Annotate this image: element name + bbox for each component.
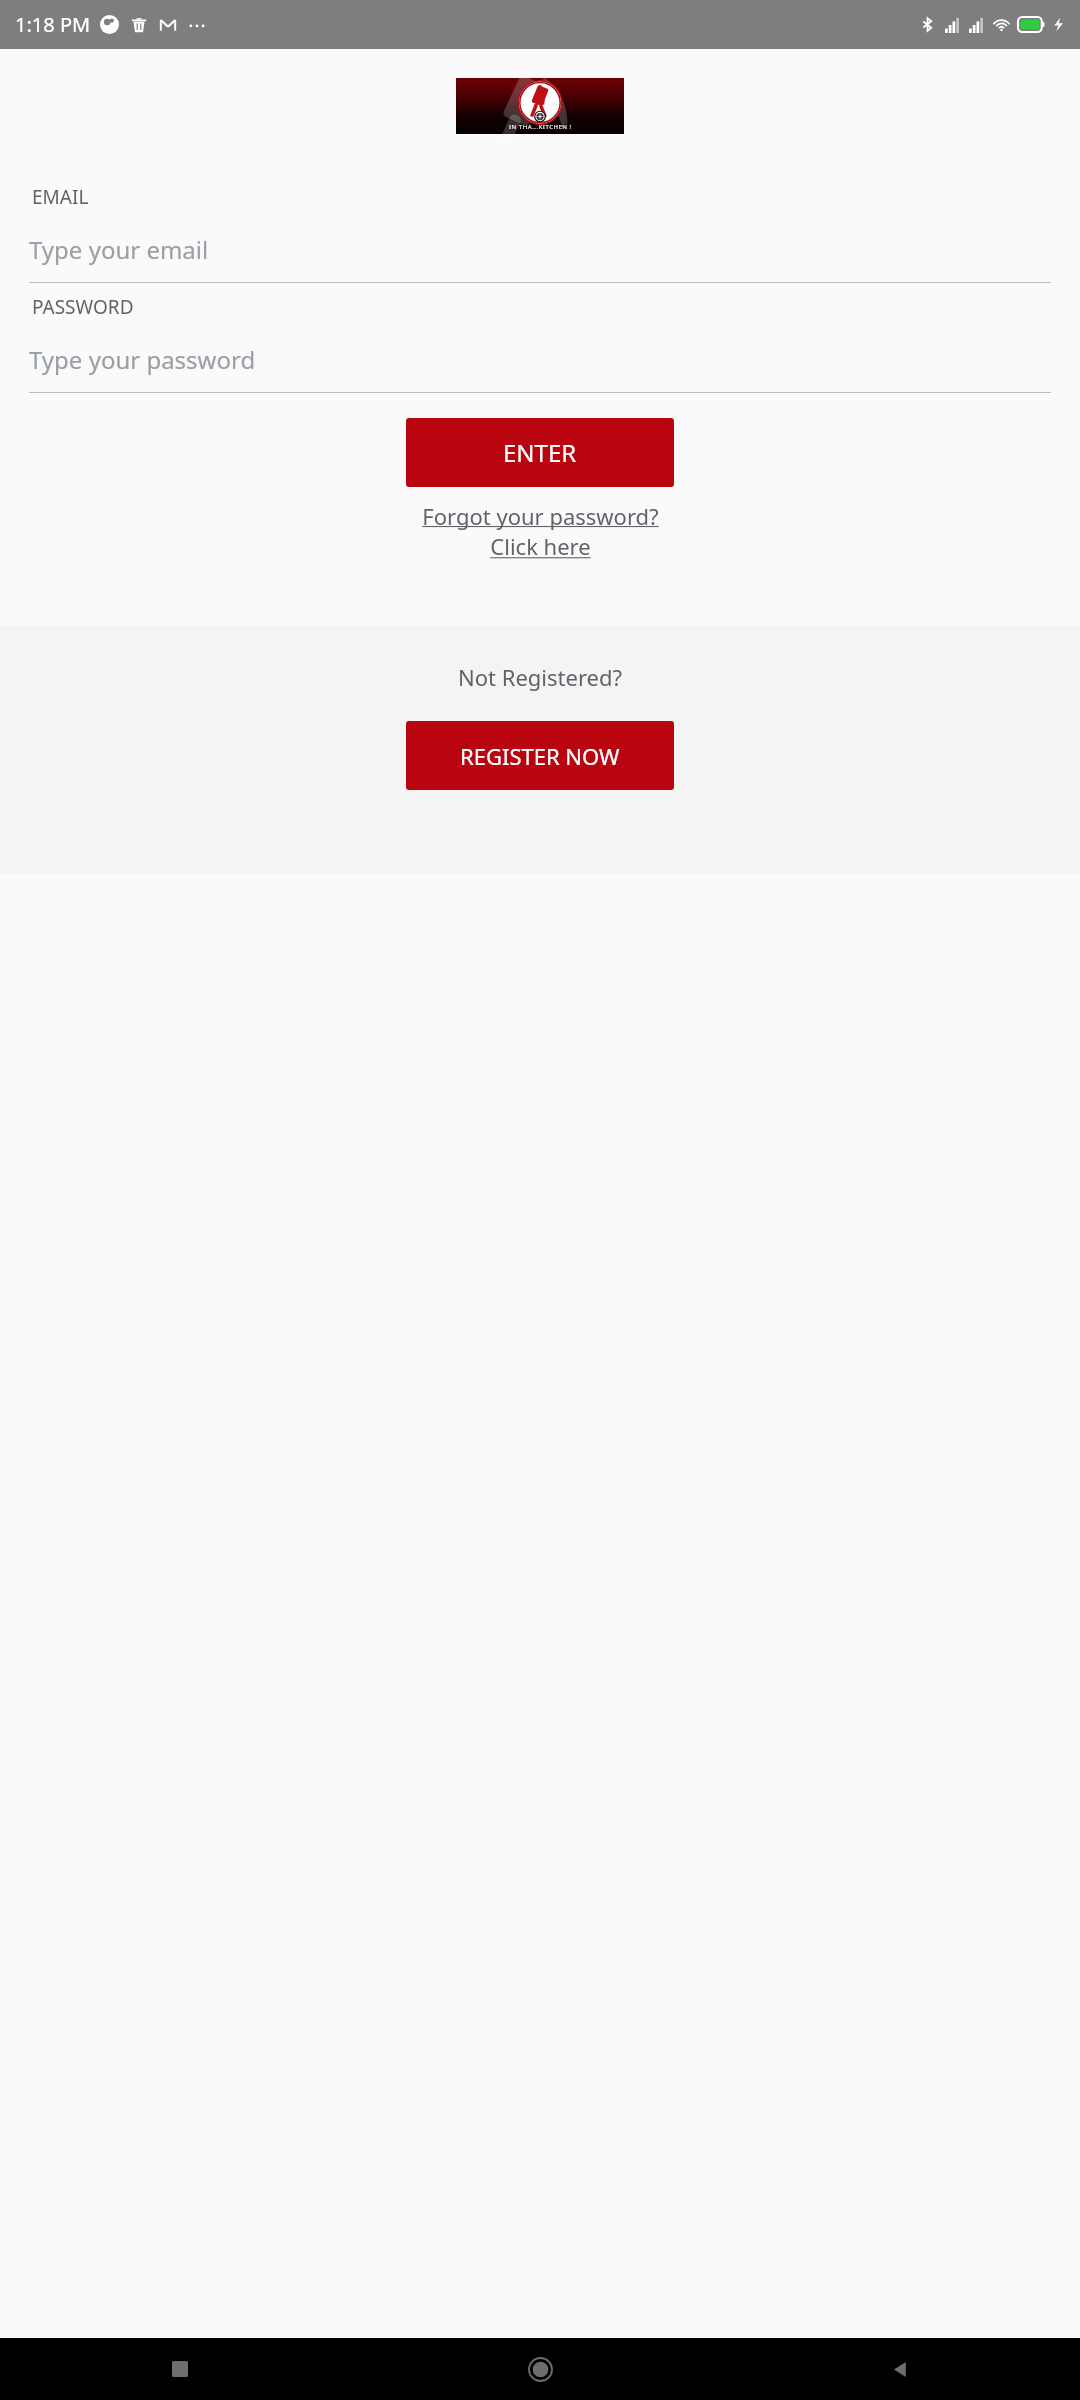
staticText: Type your email <box>29 233 209 266</box>
staticText: IN THA...KITCHEN ! <box>509 123 572 131</box>
staticText: Not Registered? <box>458 662 623 692</box>
button[interactable]: Home <box>360 2338 720 2400</box>
button[interactable]: REGISTER NOW <box>406 721 674 790</box>
staticText: REGISTER NOW <box>460 741 620 771</box>
staticText: ENTER <box>503 436 577 469</box>
staticText: Type your password <box>29 343 256 376</box>
button[interactable]: Back <box>720 2338 1080 2400</box>
button[interactable]: Forgot your password? Click here <box>0 499 1080 564</box>
button[interactable]: Type your password <box>29 339 1051 379</box>
button[interactable]: Type your email <box>29 229 1051 269</box>
button[interactable]: Recent apps <box>0 2338 360 2400</box>
staticText: PASSWORD <box>32 294 134 320</box>
staticText: Forgot your password? Click here <box>422 501 659 562</box>
staticText: EMAIL <box>32 184 89 210</box>
staticText: 1:18 PM <box>15 11 91 38</box>
button[interactable]: ENTER <box>406 418 674 487</box>
